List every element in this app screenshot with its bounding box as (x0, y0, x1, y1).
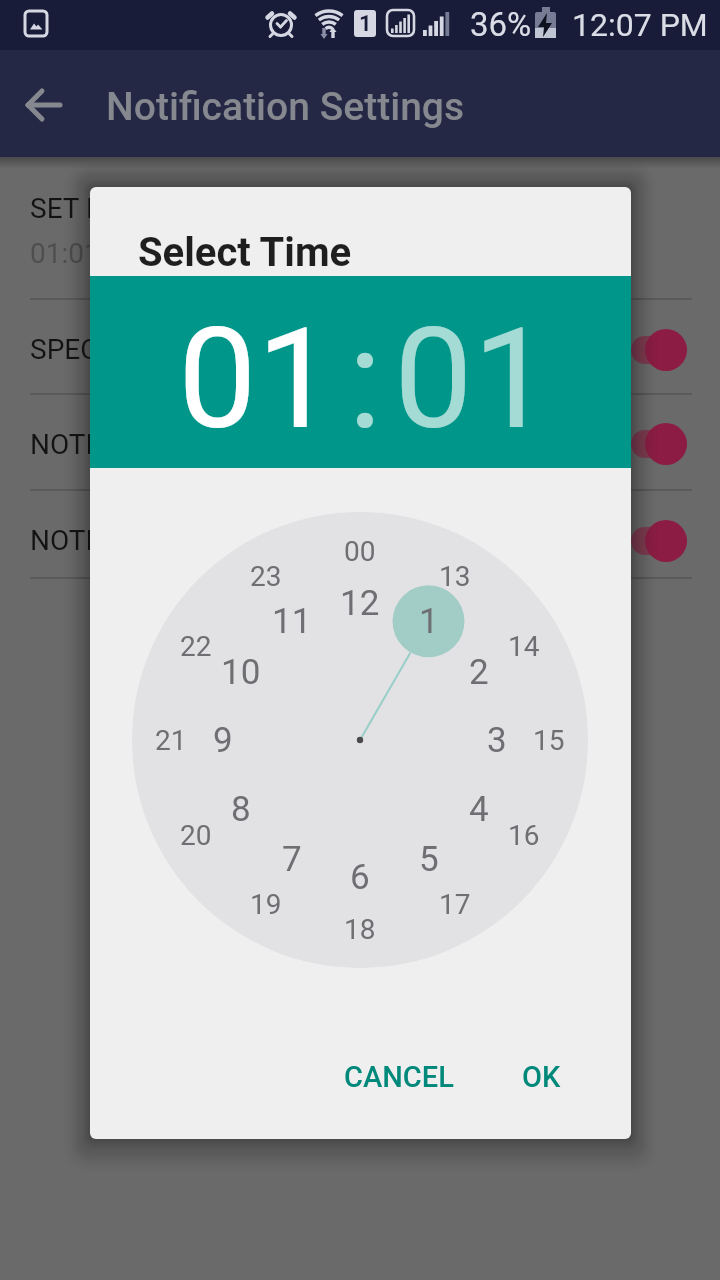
staticText: 12 (340, 583, 380, 624)
staticText: 9 (213, 720, 233, 761)
staticText: 2 (469, 652, 489, 693)
button[interactable] (645, 520, 687, 562)
button[interactable] (0, 491, 720, 577)
staticText: 21 (155, 724, 187, 757)
staticText: 5 (419, 839, 439, 880)
staticText: 16 (508, 819, 540, 852)
staticText: 12:07 PM (572, 6, 708, 44)
button[interactable] (0, 300, 720, 393)
staticText: 01:01 AM (30, 237, 150, 270)
staticText: 20 (180, 819, 212, 852)
staticText: NOTIFICATIONS (30, 524, 232, 557)
staticText: NOTIFICATION SOUND (30, 428, 314, 461)
button[interactable]: OK (481, 1042, 601, 1112)
staticText: OK (522, 1060, 561, 1094)
button[interactable] (0, 395, 720, 489)
staticText: SET NOTIFICATION TIME (30, 192, 342, 225)
button[interactable] (20, 87, 76, 143)
button[interactable]: CANCEL (324, 1042, 474, 1112)
staticText: 23 (250, 560, 282, 593)
staticText: 3 (487, 720, 507, 761)
staticText: 10 (221, 652, 261, 693)
staticText: 1 (359, 11, 372, 37)
button[interactable] (0, 157, 720, 298)
staticText: 19 (250, 888, 282, 921)
button[interactable] (645, 329, 687, 371)
staticText: 13 (439, 560, 471, 593)
staticText: 11 (272, 601, 312, 642)
staticText: 6 (350, 857, 370, 898)
staticText: 36% (470, 5, 532, 44)
staticText: 4 (469, 789, 489, 830)
button[interactable] (645, 423, 687, 465)
staticText: 8 (231, 789, 251, 830)
staticText: Notification Settings (106, 84, 465, 130)
staticText: Select Time (138, 229, 352, 276)
staticText: 00 (344, 535, 376, 568)
staticText: 17 (439, 888, 471, 921)
staticText: 14 (508, 630, 540, 663)
staticText: 15 (533, 724, 565, 757)
staticText: SPECIAL DAY OFFERS (30, 333, 306, 366)
staticText: 22 (180, 630, 212, 663)
staticText: 01 (178, 297, 336, 461)
staticText: CANCEL (344, 1060, 454, 1094)
staticText: 7 (282, 839, 302, 880)
staticText: 18 (344, 913, 376, 946)
staticText: : (348, 297, 382, 461)
staticText: 1 (419, 601, 439, 642)
staticText: 01 (394, 297, 552, 461)
